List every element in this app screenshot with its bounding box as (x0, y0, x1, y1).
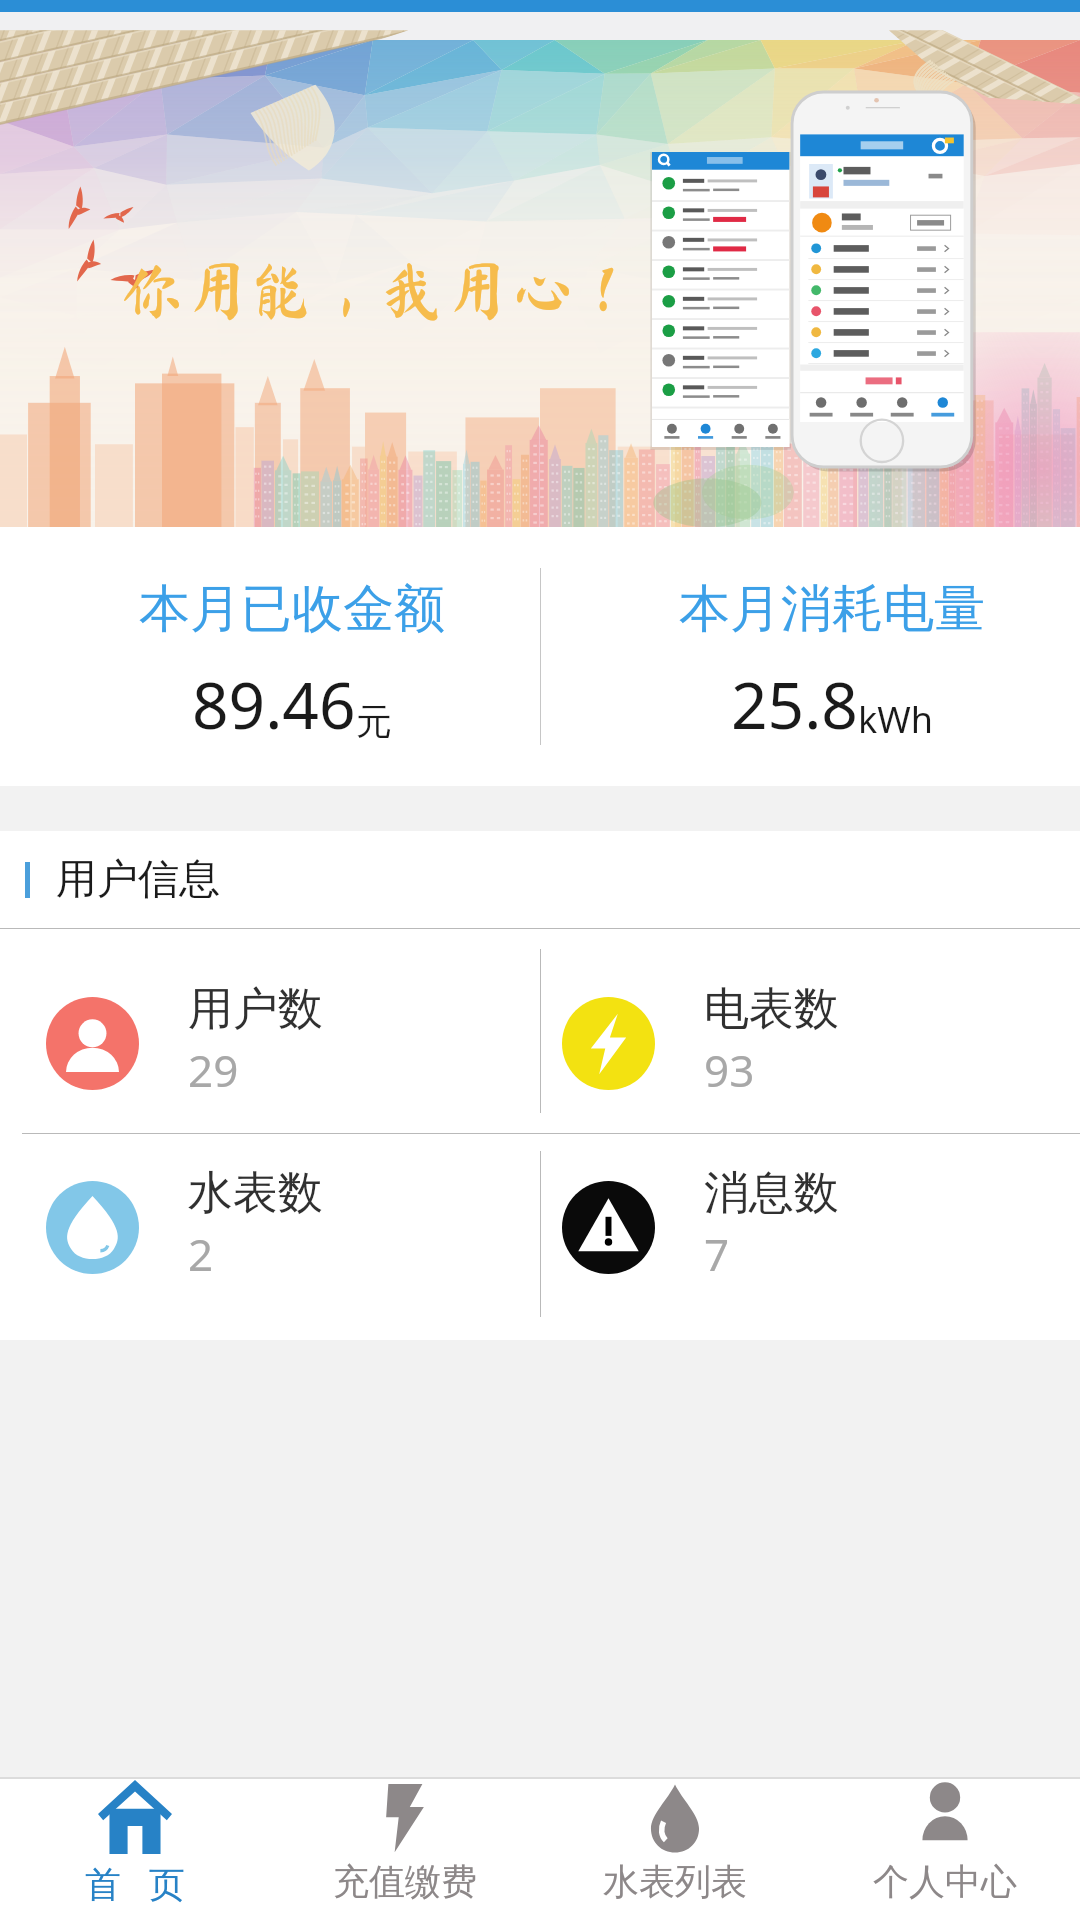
button[interactable]: 充值缴费 (270, 1779, 540, 1919)
staticText: 89.46 (192, 661, 356, 748)
staticText: kWh (858, 695, 933, 744)
button[interactable]: 电表数 (540, 937, 1080, 1141)
staticText: 元 (356, 699, 392, 744)
button[interactable]: 水表列表 (540, 1779, 810, 1919)
button[interactable]: 个人中心 (810, 1779, 1080, 1919)
staticText: 本月已收金额 (139, 577, 445, 641)
staticText: 本月消耗电量 (679, 577, 985, 641)
button[interactable]: 用户数 (0, 937, 540, 1141)
staticText: 电表数 (704, 981, 839, 1038)
button[interactable]: 首 页 (0, 1779, 270, 1919)
staticText: 消息数 (704, 1165, 839, 1222)
button[interactable]: 本月消耗电量 (562, 533, 1080, 792)
button[interactable]: 消息数 (540, 1120, 1080, 1326)
button[interactable]: 本月已收金额 (22, 533, 562, 792)
staticText: 充值缴费 (333, 1859, 477, 1904)
staticText: 你用能，我用心！ (120, 259, 640, 322)
staticText: 首 页 (85, 1859, 186, 1908)
staticText: 用户数 (188, 981, 323, 1038)
staticText: 93 (704, 1040, 755, 1100)
staticText: 水表列表 (603, 1859, 747, 1904)
staticText: 个人中心 (873, 1859, 1017, 1904)
staticText: 用户信息 (56, 854, 220, 906)
staticText: 25.8 (731, 661, 858, 748)
button[interactable]: 水表数 (0, 1120, 540, 1326)
staticText: 水表数 (188, 1165, 323, 1222)
staticText: 7 (704, 1224, 730, 1284)
staticText: 29 (188, 1040, 239, 1100)
staticText: 2 (188, 1224, 214, 1284)
